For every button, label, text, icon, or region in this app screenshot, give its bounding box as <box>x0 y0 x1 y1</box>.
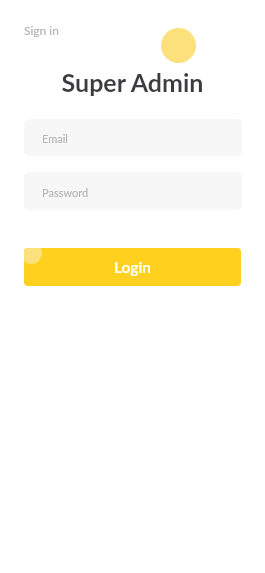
staticText: Sign in <box>24 23 59 37</box>
button[interactable]: Login <box>24 248 241 286</box>
other: Decoration <box>161 28 196 63</box>
button[interactable]: Sign in <box>24 23 59 37</box>
staticText: Email <box>42 132 68 145</box>
staticText: Super Admin <box>0 67 265 97</box>
staticText: Password <box>42 186 89 199</box>
button[interactable]: Password <box>24 172 242 210</box>
staticText: Login <box>114 258 151 277</box>
button[interactable]: Email <box>24 119 242 156</box>
